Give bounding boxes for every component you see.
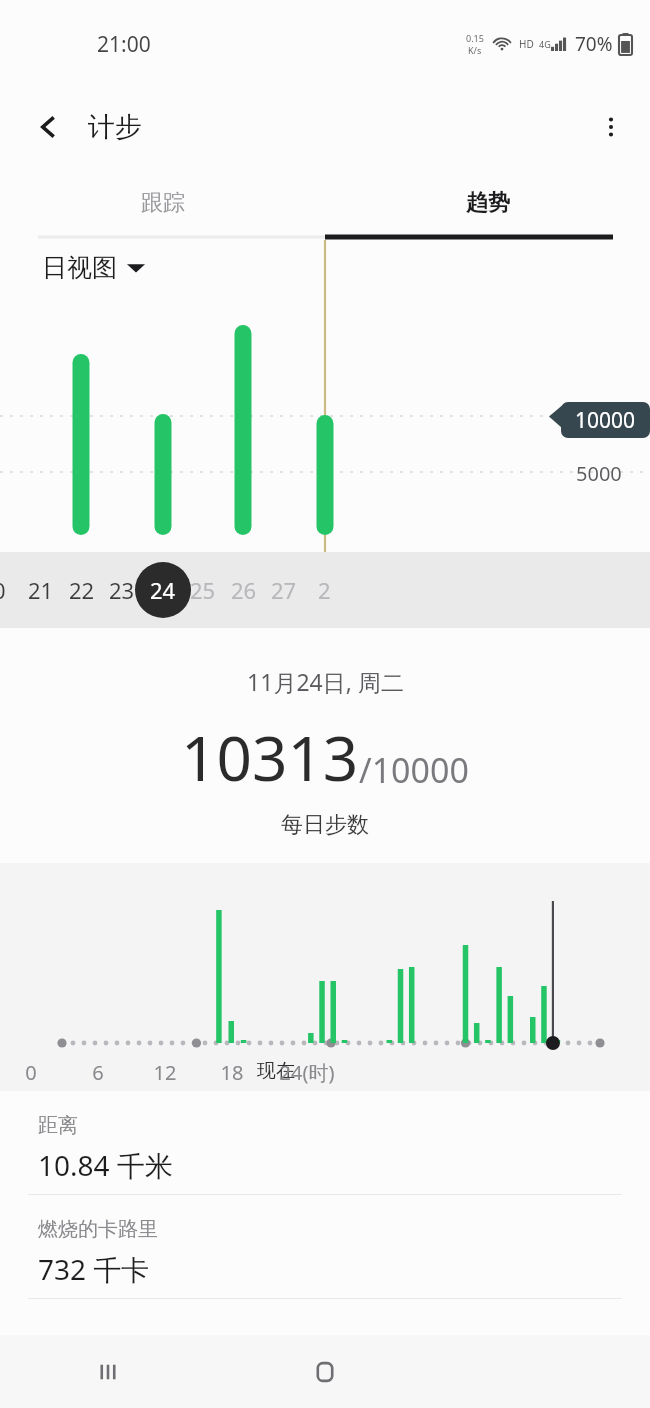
staticText: 10313 (181, 715, 359, 799)
staticText: /10000 (359, 747, 469, 793)
staticText: 距离 (38, 1113, 78, 1138)
button[interactable]: 更多选项 (584, 100, 638, 154)
button[interactable]: 燃烧的卡路里 (0, 1195, 650, 1298)
staticText: 4G (539, 38, 551, 50)
button[interactable]: 距离 (0, 1091, 650, 1194)
staticText: 0 (0, 575, 6, 605)
staticText: 23 (109, 575, 135, 605)
button[interactable]: 21 (11, 552, 71, 628)
staticText: 22 (69, 575, 95, 605)
button[interactable]: 24 (133, 552, 193, 628)
staticText: 25 (190, 575, 216, 605)
staticText: 21:00 (97, 30, 151, 59)
staticText: HD (519, 37, 534, 51)
button[interactable]: 主屏幕 (216, 1335, 433, 1408)
staticText: 24(时) (279, 1059, 335, 1086)
staticText: 日视图 (42, 252, 117, 283)
staticText: 732 千卡 (38, 1250, 150, 1288)
staticText: 现在 (248, 1059, 304, 1083)
staticText: 21 (28, 575, 54, 605)
button[interactable]: 日视图 (42, 252, 145, 283)
staticText: 2 (318, 575, 331, 605)
staticText: 每日步数 (281, 811, 369, 839)
staticText: 10.84 千米 (38, 1146, 173, 1184)
button[interactable]: 2 (294, 552, 354, 628)
staticText: 5000 (576, 460, 622, 487)
button[interactable]: 趋势 (325, 166, 650, 240)
button[interactable]: 返回 (22, 100, 76, 154)
button[interactable]: 0 (0, 552, 29, 628)
staticText: 10000 (575, 406, 636, 435)
staticText: 70% (575, 31, 613, 57)
staticText: 计步 (88, 110, 142, 144)
button[interactable]: 26 (214, 552, 274, 628)
staticText: 跟踪 (141, 189, 185, 217)
staticText: 0.15 (466, 32, 484, 44)
staticText: 燃烧的卡路里 (38, 1217, 158, 1242)
staticText: K/s (468, 44, 482, 56)
button[interactable]: 27 (254, 552, 314, 628)
staticText: 24 (150, 575, 176, 605)
button[interactable]: 25 (173, 552, 233, 628)
staticText: 6 (70, 1059, 126, 1086)
button[interactable]: 跟踪 (0, 166, 325, 240)
staticText: 11月24日, 周二 (247, 666, 404, 697)
staticText: 26 (231, 575, 257, 605)
button[interactable]: 23 (92, 552, 152, 628)
staticText: 12 (137, 1059, 193, 1086)
staticText: 0 (3, 1059, 59, 1086)
button[interactable]: 最近任务 (0, 1335, 216, 1408)
staticText: 27 (271, 575, 297, 605)
staticText: 18 (204, 1059, 260, 1086)
staticText: 趋势 (466, 189, 510, 217)
button[interactable]: 22 (52, 552, 112, 628)
